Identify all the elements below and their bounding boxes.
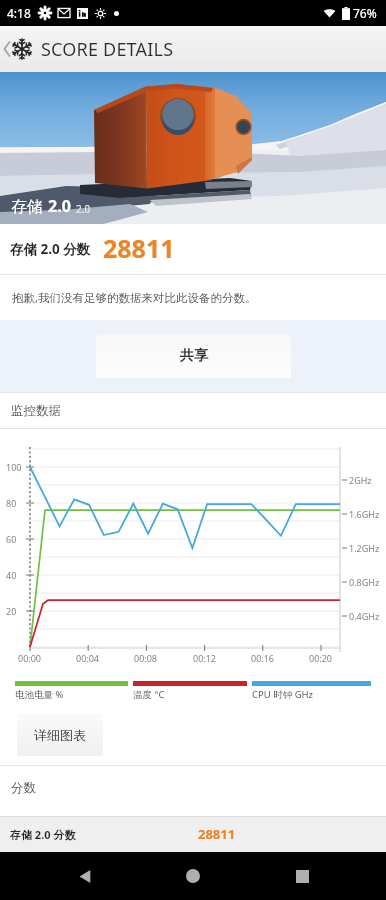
staticText: 存储 [11, 195, 48, 217]
staticText: 2.0 [48, 195, 71, 217]
staticText: 00:04 [76, 652, 100, 664]
staticText: 存储 2.0 分数 [10, 827, 76, 842]
staticText: 0.8GHz [349, 576, 380, 588]
staticText: 60 [6, 533, 17, 545]
staticText: 0.4GHz [349, 610, 380, 622]
button[interactable]: Home [169, 852, 217, 900]
button[interactable]: Back [0, 26, 38, 72]
staticText: 4:18 [7, 5, 31, 21]
staticText: 28811 [198, 825, 236, 843]
button[interactable]: 详细图表 [17, 714, 103, 756]
staticText: 80 [6, 497, 17, 509]
staticText: CPU 时钟 GHz [252, 688, 314, 701]
staticText: 00:12 [193, 652, 217, 664]
staticText: SCORE DETAILS [41, 37, 174, 62]
staticText: 2.0 [76, 202, 91, 216]
staticText: 电池电量 % [15, 688, 64, 701]
staticText: 40 [6, 569, 17, 581]
staticText: 1.6GHz [349, 508, 380, 520]
button[interactable]: Recent apps [278, 852, 326, 900]
staticText: 共享 [180, 347, 208, 365]
staticText: 76% [353, 5, 377, 21]
staticText: 抱歉,我们没有足够的数据来对比此设备的分数。 [12, 290, 257, 306]
staticText: 00:20 [309, 652, 333, 664]
staticText: 详细图表 [34, 727, 86, 743]
staticText: 1.2GHz [349, 542, 380, 554]
staticText: 100 [6, 461, 22, 473]
button[interactable]: Back [61, 852, 109, 900]
button[interactable]: 共享 [96, 334, 291, 378]
staticText: 00:08 [134, 652, 158, 664]
staticText: 监控数据 [11, 403, 61, 419]
staticText: 存储 2.0 分数 [10, 240, 91, 258]
staticText: 分数 [11, 780, 36, 796]
staticText: 2GHz [349, 474, 372, 486]
staticText: 00:16 [251, 652, 275, 664]
staticText: 28811 [103, 231, 175, 265]
staticText: 20 [6, 605, 17, 617]
staticText: 温度 °C [133, 688, 165, 701]
staticText: 00:00 [18, 652, 42, 664]
